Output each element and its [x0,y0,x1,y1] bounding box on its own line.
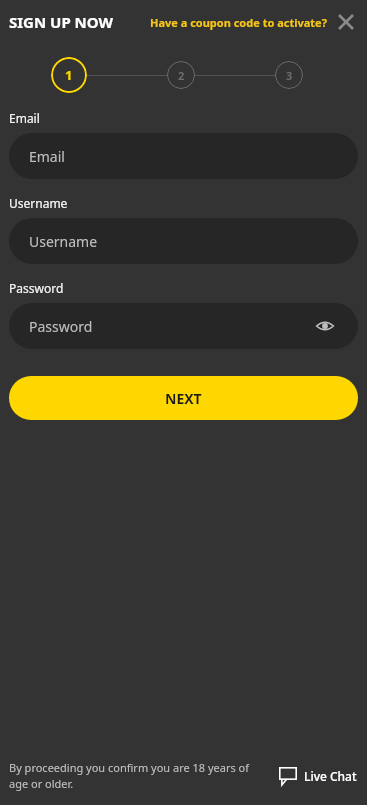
button[interactable]: Show password [312,313,338,339]
button[interactable]: Step 1 [51,57,87,93]
staticText: 1 [65,66,73,84]
button[interactable]: Password [9,303,358,349]
staticText: Password [29,317,93,336]
button[interactable]: Username [9,218,358,264]
staticText: Email [9,110,40,126]
staticText: Have a coupon code to activate? [150,15,327,30]
button[interactable]: NEXT [9,376,358,420]
staticText: By proceeding you confirm you are 18 yea… [9,760,261,791]
staticText: SIGN UP NOW [9,12,114,32]
staticText: Email [29,147,65,166]
staticText: NEXT [165,389,202,408]
button[interactable]: Close [331,7,361,37]
staticText: 3 [286,68,293,83]
button[interactable]: Step 2 [167,61,195,89]
staticText: Username [9,195,68,211]
staticText: 2 [178,68,185,83]
button[interactable]: Email [9,133,358,179]
button[interactable]: Live Chat [279,767,357,785]
staticText: Live Chat [304,768,357,784]
button[interactable]: Step 3 [275,61,303,89]
button[interactable]: Have a coupon code to activate? [150,15,327,30]
staticText: Password [9,280,64,296]
staticText: Username [29,232,98,251]
